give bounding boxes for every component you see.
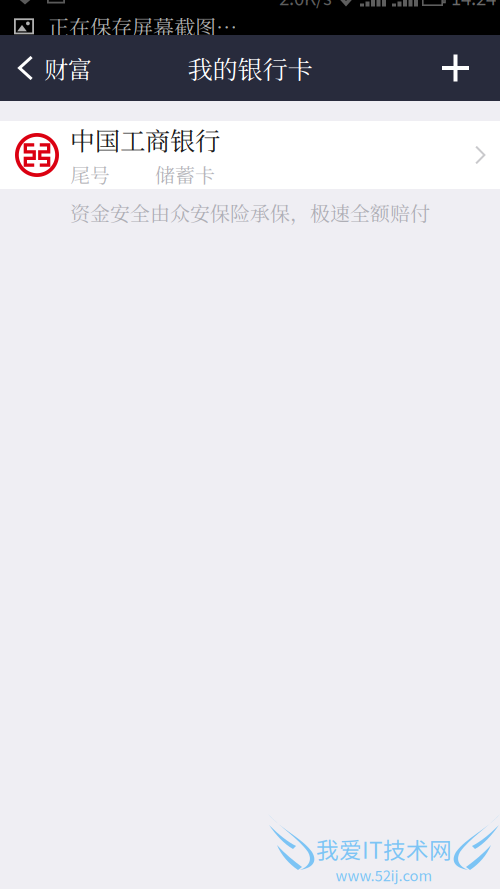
staticText: 尾号: [70, 160, 110, 188]
staticText: www.52ij.com: [335, 864, 432, 885]
staticText: 中国工商银行: [70, 121, 220, 158]
button[interactable]: 财富: [0, 35, 106, 101]
staticText: 2.0K/s: [279, 0, 332, 10]
staticText: 资金安全由众安保险承保，极速全额赔付: [70, 198, 430, 227]
staticText: 储蓄卡: [155, 160, 215, 188]
staticText: 14:24: [451, 0, 496, 10]
staticText: 我的银行卡: [187, 50, 312, 86]
staticText: 我爱IT技术网: [316, 832, 452, 865]
button[interactable]: 中国工商银行: [0, 121, 500, 189]
staticText: 财富: [44, 51, 92, 85]
staticText: 正在保存屏幕截图…: [48, 11, 237, 42]
button[interactable]: Add bank card: [425, 35, 500, 101]
